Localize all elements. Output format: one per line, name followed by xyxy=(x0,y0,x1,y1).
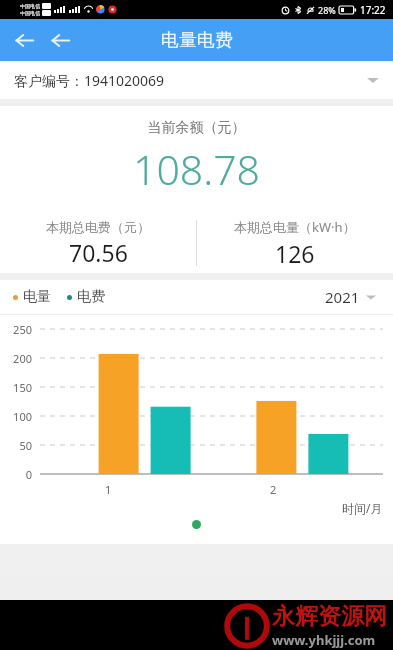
staticText: 2021 xyxy=(325,287,360,307)
staticText: 100 xyxy=(0,409,32,424)
button[interactable]: 电量 xyxy=(13,284,51,310)
button[interactable]: Back xyxy=(6,22,42,58)
staticText: 中国电信 xyxy=(20,3,40,9)
staticText: www.yhkjjj.com xyxy=(272,631,376,649)
staticText: 50 xyxy=(0,438,32,453)
staticText: 126 xyxy=(275,238,315,269)
staticText: 电费 xyxy=(77,288,105,306)
button[interactable]: 2021 xyxy=(321,283,380,311)
button[interactable]: Up xyxy=(42,22,78,58)
staticText: 永辉资源网 xyxy=(272,602,387,631)
staticText: 1 xyxy=(105,482,112,497)
staticText: 本期总电费（元） xyxy=(46,219,150,235)
staticText: 0 xyxy=(0,467,32,482)
button[interactable]: 电费 xyxy=(67,284,105,310)
staticText: 当前余额（元） xyxy=(0,119,393,137)
staticText: 108.78 xyxy=(0,141,393,197)
staticText: 250 xyxy=(0,322,32,337)
staticText: 电量电费 xyxy=(161,29,233,52)
staticText: 本期总电量（kW·h） xyxy=(234,218,356,236)
staticText: 中国电信 xyxy=(20,10,40,16)
staticText: 时间/月 xyxy=(342,500,383,516)
staticText: 17:22 xyxy=(360,3,386,17)
staticText: 28% xyxy=(318,4,336,16)
staticText: 电量 xyxy=(23,288,51,306)
staticText: 70.56 xyxy=(69,237,128,268)
staticText: 200 xyxy=(0,351,32,366)
staticText: 150 xyxy=(0,380,32,395)
button[interactable]: 客户编号：1941020069 xyxy=(0,61,393,99)
staticText: 2 xyxy=(270,482,277,497)
staticText: 客户编号：1941020069 xyxy=(14,71,165,90)
